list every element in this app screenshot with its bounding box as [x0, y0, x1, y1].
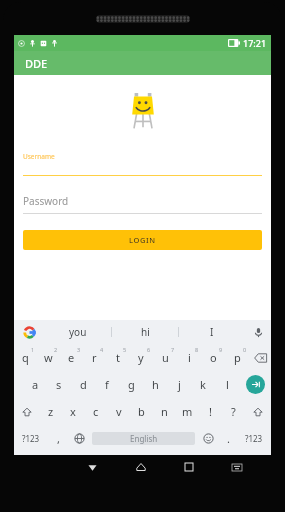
button[interactable]: Recents	[165, 455, 213, 479]
staticText: r	[92, 350, 97, 365]
button[interactable]: g	[119, 371, 143, 398]
button[interactable]: a	[24, 371, 47, 398]
staticText: I	[210, 325, 214, 339]
staticText: LOGIN	[129, 235, 156, 245]
staticText: s	[56, 377, 62, 392]
button[interactable]: f	[95, 371, 119, 398]
staticText: i	[188, 350, 191, 365]
button[interactable]: Username	[23, 152, 262, 176]
button[interactable]: v	[107, 398, 130, 425]
button[interactable]: b	[130, 398, 153, 425]
button[interactable]: English	[92, 432, 195, 445]
button[interactable]: 4	[83, 344, 106, 371]
staticText: q	[22, 350, 29, 365]
staticText: u	[162, 350, 169, 365]
button[interactable]: 7	[153, 344, 177, 371]
staticText: Password	[23, 194, 69, 208]
staticText: w	[44, 350, 53, 365]
button[interactable]: m	[176, 398, 199, 425]
button[interactable]: you	[44, 320, 111, 344]
button[interactable]: Google	[14, 320, 44, 344]
button[interactable]: Next	[239, 371, 271, 398]
button[interactable]: c	[84, 398, 107, 425]
button[interactable]: h	[143, 371, 167, 398]
staticText: p	[234, 350, 241, 365]
button[interactable]: 8	[177, 344, 201, 371]
button[interactable]: LOGIN	[23, 230, 262, 250]
staticText: c	[93, 404, 99, 419]
button[interactable]: Change language	[68, 425, 90, 452]
staticText: 4	[100, 346, 104, 353]
staticText: v	[116, 404, 122, 419]
button[interactable]: Voice input	[245, 320, 271, 344]
staticText: g	[128, 377, 135, 392]
staticText: 1	[31, 346, 35, 353]
button[interactable]: Keyboard	[213, 455, 261, 479]
staticText: 6	[147, 346, 151, 353]
staticText: f	[105, 377, 109, 392]
staticText: ?123	[22, 433, 40, 444]
button[interactable]: 3	[60, 344, 83, 371]
staticText: English	[130, 433, 158, 444]
button[interactable]: n	[153, 398, 176, 425]
button[interactable]: Home	[117, 455, 165, 479]
staticText: DDE	[25, 56, 48, 71]
button[interactable]: ,	[48, 425, 68, 452]
staticText: x	[70, 404, 76, 419]
staticText: a	[32, 377, 39, 392]
button[interactable]: 0	[225, 344, 249, 371]
button[interactable]: 5	[106, 344, 129, 371]
button[interactable]: DDE	[14, 51, 271, 75]
staticText: ,	[57, 431, 60, 446]
staticText: ?123	[245, 433, 263, 444]
staticText: you	[69, 325, 87, 339]
button[interactable]: 9	[201, 344, 225, 371]
staticText: ?	[231, 404, 236, 419]
staticText: b	[138, 404, 145, 419]
staticText: n	[161, 404, 168, 419]
staticText: o	[210, 350, 217, 365]
staticText: k	[200, 377, 206, 392]
button[interactable]: ?123	[237, 425, 271, 452]
button[interactable]: x	[62, 398, 84, 425]
button[interactable]: hi	[112, 320, 178, 344]
staticText: 0	[243, 346, 247, 353]
button[interactable]: Shift	[14, 398, 40, 425]
staticText: y	[138, 350, 144, 365]
button[interactable]: 6	[129, 344, 153, 371]
staticText: hi	[141, 325, 150, 339]
button[interactable]: l	[215, 371, 239, 398]
button[interactable]: Back	[68, 455, 117, 479]
button[interactable]: j	[167, 371, 191, 398]
button[interactable]: Backspace	[249, 344, 271, 371]
button[interactable]: 1	[14, 344, 37, 371]
staticText: !	[209, 404, 212, 419]
staticText: 3	[77, 346, 81, 353]
staticText: z	[48, 404, 54, 419]
button[interactable]: .	[219, 425, 237, 452]
button[interactable]: z	[40, 398, 62, 425]
staticText: j	[178, 377, 181, 392]
staticText: Username	[23, 152, 55, 161]
button[interactable]: Password	[23, 194, 262, 214]
button[interactable]: s	[47, 371, 71, 398]
staticText: 8	[195, 346, 199, 353]
button[interactable]: ?123	[14, 425, 48, 452]
button[interactable]: !	[199, 398, 222, 425]
button[interactable]: Emoji	[197, 425, 219, 452]
staticText: e	[68, 350, 75, 365]
staticText: t	[116, 350, 120, 365]
staticText: 17:21	[243, 37, 267, 49]
button[interactable]: 2	[37, 344, 60, 371]
staticText: h	[152, 377, 159, 392]
staticText: .	[227, 431, 230, 446]
button[interactable]: ?	[222, 398, 245, 425]
button[interactable]: Shift	[245, 398, 271, 425]
staticText: m	[182, 404, 193, 419]
staticText: 7	[171, 346, 175, 353]
button[interactable]: I	[179, 320, 245, 344]
staticText: 5	[123, 346, 127, 353]
staticText: 2	[54, 346, 58, 353]
button[interactable]: k	[191, 371, 215, 398]
button[interactable]: d	[71, 371, 95, 398]
